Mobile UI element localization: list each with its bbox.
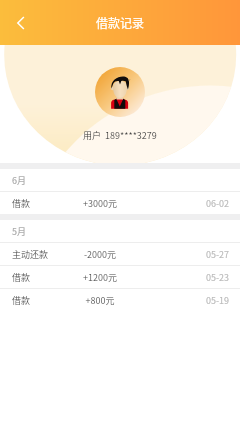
staticText: 用户 189****3279	[83, 129, 157, 142]
staticText: +1200元	[70, 271, 130, 284]
staticText: 05-27	[131, 248, 229, 261]
staticText: -2000元	[70, 248, 130, 261]
button[interactable]: Back	[0, 2, 42, 44]
staticText: 借款记录	[96, 14, 145, 31]
staticText: 6月	[12, 174, 26, 187]
staticText: 借款	[12, 294, 70, 307]
staticText: 5月	[12, 225, 26, 238]
staticText: 借款	[12, 271, 70, 284]
staticText: 05-19	[131, 294, 229, 307]
staticText: +3000元	[70, 197, 130, 210]
button[interactable]: 借款	[0, 191, 240, 214]
button[interactable]: 借款	[0, 265, 240, 288]
staticText: 主动还款	[12, 248, 70, 261]
staticText: 05-23	[131, 271, 229, 284]
button[interactable]: 主动还款	[0, 242, 240, 265]
button[interactable]: 借款	[0, 288, 240, 311]
staticText: 06-02	[131, 197, 229, 210]
staticText: 借款	[12, 197, 70, 210]
staticText: +800元	[70, 294, 130, 307]
